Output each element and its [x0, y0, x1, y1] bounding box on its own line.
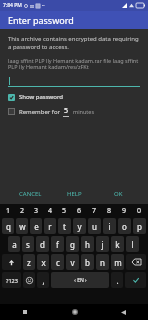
staticText: 9 [122, 206, 127, 216]
button[interactable]: Backspace [126, 254, 146, 270]
staticText: c [56, 257, 60, 268]
button[interactable]: 5 [57, 205, 72, 217]
staticText: laag sffint PLP lly Hemant kadam.rar fil… [8, 57, 140, 71]
button[interactable]: Recents [0, 304, 50, 320]
button[interactable]: a [8, 236, 20, 252]
staticText: m [114, 257, 122, 268]
button[interactable]: Remember for [8, 106, 140, 117]
staticText: q [6, 221, 11, 232]
button[interactable]: s [22, 236, 34, 252]
staticText: ?123 [6, 277, 18, 284]
button[interactable]: i [103, 218, 116, 234]
button[interactable]: ‹ EN › [51, 272, 109, 288]
button[interactable]: 0 [132, 205, 147, 217]
button[interactable]: Show password [8, 93, 140, 101]
button[interactable]: 2 [15, 205, 29, 217]
button[interactable]: g [66, 236, 79, 252]
staticText: p [137, 221, 142, 232]
button[interactable]: Enter [125, 272, 146, 288]
staticText: 7 [92, 206, 97, 216]
staticText: e [34, 221, 39, 232]
staticText: 7:84 PM [3, 2, 22, 9]
button[interactable]: u [88, 218, 101, 234]
button[interactable]: m [111, 254, 124, 270]
button[interactable]: OK [96, 186, 140, 202]
button[interactable]: Home [50, 304, 99, 320]
button[interactable]: q [2, 218, 14, 234]
button[interactable]: v [66, 254, 79, 270]
staticText: x [41, 257, 46, 268]
staticText: minutes [73, 108, 95, 115]
staticText: y [77, 221, 82, 232]
staticText: 4 [48, 206, 53, 216]
button[interactable]: o [118, 218, 131, 234]
staticText: l [131, 239, 134, 250]
staticText: 0 [137, 206, 142, 216]
button[interactable]: h [81, 236, 94, 252]
button[interactable]: 9 [117, 205, 132, 217]
staticText: v [70, 257, 75, 268]
button[interactable]: y [73, 218, 86, 234]
staticText: OK [114, 190, 123, 198]
staticText: f [56, 239, 59, 250]
button[interactable]: f [51, 236, 64, 252]
staticText: n [100, 257, 105, 268]
button[interactable]: HELP [52, 186, 96, 202]
staticText: b [85, 257, 90, 268]
staticText: o [122, 221, 127, 232]
button[interactable]: r [44, 218, 56, 234]
button[interactable]: 7 [87, 205, 102, 217]
button[interactable]: w [16, 218, 28, 234]
staticText: j [101, 239, 104, 250]
button[interactable]: c [51, 254, 64, 270]
staticText: 6 [77, 206, 82, 216]
staticText: d [40, 239, 45, 250]
staticText: g [70, 239, 75, 250]
button[interactable]: n [96, 254, 109, 270]
button[interactable]: CANCEL [8, 186, 52, 202]
staticText: r [48, 221, 52, 232]
button[interactable]: Emoji [23, 272, 35, 288]
staticText: w [19, 221, 26, 232]
button[interactable]: 6 [72, 205, 87, 217]
button[interactable]: 8 [102, 205, 117, 217]
staticText: s [26, 239, 30, 250]
button[interactable]: p [133, 218, 146, 234]
staticText: k [115, 239, 120, 250]
button[interactable]: j [96, 236, 109, 252]
button[interactable]: Back [99, 304, 148, 320]
staticText: Show password [19, 93, 63, 101]
button[interactable]: 3 [29, 205, 43, 217]
button[interactable]: z [23, 254, 35, 270]
staticText: 5 [62, 206, 67, 216]
staticText: CANCEL [19, 190, 42, 198]
button[interactable]: , [37, 272, 49, 288]
staticText: u [92, 221, 97, 232]
button[interactable]: t [58, 218, 71, 234]
button[interactable]: e [30, 218, 42, 234]
button[interactable]: k [111, 236, 124, 252]
button[interactable]: 4 [43, 205, 57, 217]
staticText: . [116, 275, 119, 286]
staticText: ·· [42, 2, 45, 9]
button[interactable]: l [126, 236, 139, 252]
button[interactable]: 1 [1, 205, 15, 217]
button[interactable] [8, 75, 140, 87]
button[interactable]: b [81, 254, 94, 270]
staticText: , [42, 275, 45, 286]
staticText: t [63, 221, 66, 232]
staticText: h [85, 239, 90, 250]
button[interactable]: x [37, 254, 49, 270]
button[interactable]: . [111, 272, 123, 288]
button[interactable]: d [36, 236, 49, 252]
staticText: 5 [64, 106, 69, 116]
staticText: 8 [107, 206, 112, 216]
staticText: HELP [67, 190, 82, 198]
staticText: 2 [20, 206, 25, 216]
button[interactable]: ?123 [2, 272, 21, 288]
staticText: Remember for [19, 108, 61, 116]
button[interactable]: Shift [2, 254, 21, 270]
staticText: ‹ EN › [74, 277, 87, 284]
staticText: Enter password [8, 14, 74, 26]
staticText: 3 [34, 206, 39, 216]
